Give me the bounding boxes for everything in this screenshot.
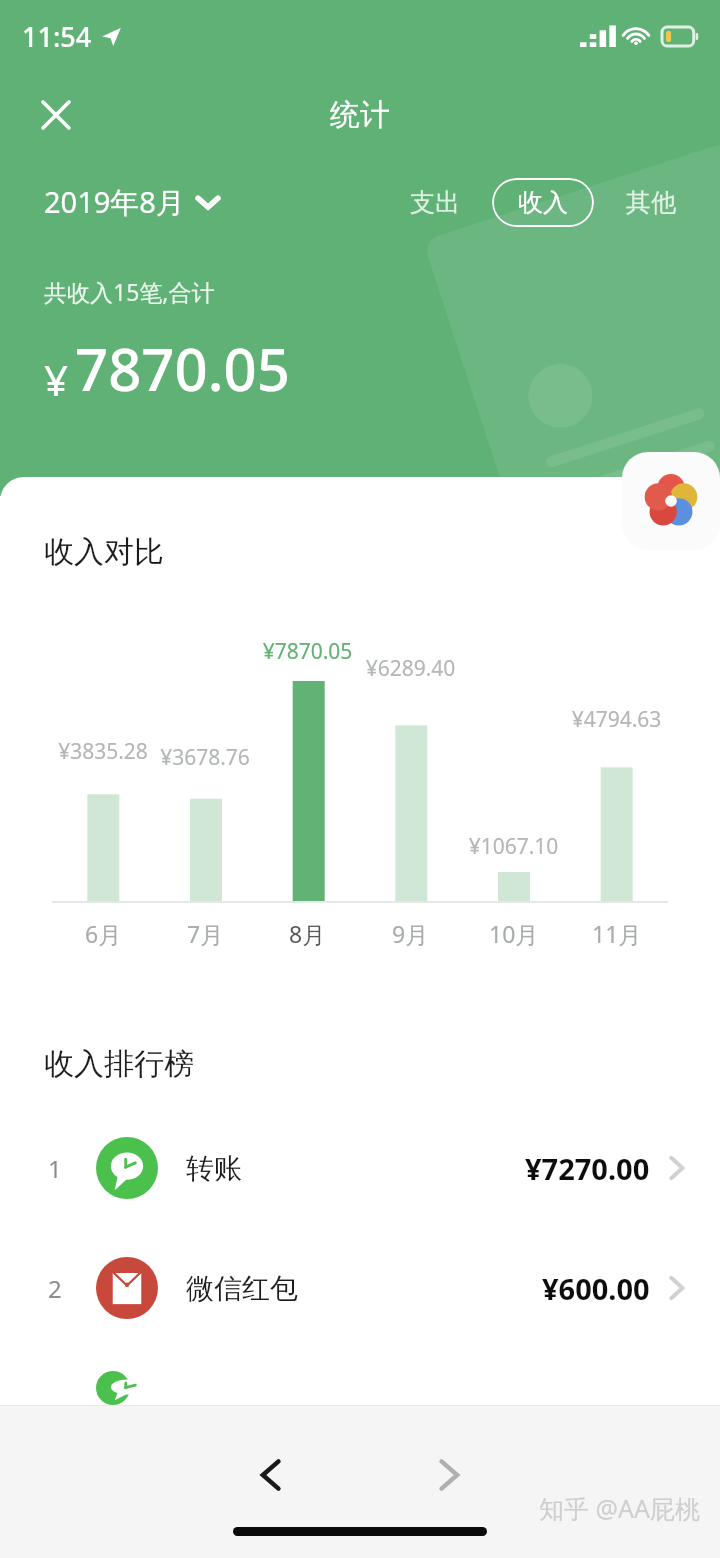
staticText: 收入排行榜 bbox=[44, 1045, 194, 1083]
staticText: ¥1067.10 bbox=[462, 832, 565, 861]
staticText: 转账 bbox=[186, 1151, 242, 1186]
staticText: 11:54 bbox=[22, 18, 92, 55]
button[interactable]: 支出 bbox=[396, 179, 474, 226]
staticText: 8月 bbox=[289, 918, 326, 949]
staticText: 7月 bbox=[187, 918, 224, 949]
staticText: 微信红包 bbox=[186, 1271, 298, 1306]
staticText: ¥3835.28 bbox=[52, 737, 154, 766]
staticText: 知乎 @AA屁桃 bbox=[539, 1491, 700, 1525]
staticText: ¥7870.05 bbox=[256, 637, 359, 666]
staticText: ¥3678.76 bbox=[154, 743, 256, 772]
staticText: ¥6289.40 bbox=[359, 654, 462, 683]
staticText: 收入 bbox=[518, 187, 568, 218]
staticText: 11月 bbox=[592, 918, 642, 949]
staticText: 7870.05 bbox=[75, 329, 290, 408]
staticText: 2019年8月 bbox=[44, 182, 185, 222]
staticText: ¥7270.00 bbox=[525, 1149, 650, 1188]
button[interactable]: 收入 bbox=[492, 178, 594, 227]
staticText: 其他 bbox=[626, 187, 676, 218]
staticText: 收入对比 bbox=[44, 533, 164, 571]
button[interactable]: Back bbox=[225, 1429, 317, 1521]
staticText: 统计 bbox=[330, 96, 390, 134]
button[interactable]: 其他 bbox=[612, 179, 690, 226]
button[interactable]: 1 bbox=[0, 1131, 720, 1205]
staticText: 6月 bbox=[85, 918, 122, 949]
staticText: 9月 bbox=[392, 918, 429, 949]
button[interactable]: Close bbox=[22, 81, 90, 149]
staticText: ¥600.00 bbox=[542, 1269, 650, 1308]
staticText: 1 bbox=[48, 1152, 62, 1185]
button[interactable]: 2019年8月 bbox=[44, 176, 219, 228]
button[interactable]: App logo bbox=[622, 452, 720, 550]
staticText: 10月 bbox=[489, 918, 539, 949]
button[interactable]: 2 bbox=[0, 1251, 720, 1325]
button[interactable]: Forward bbox=[403, 1429, 495, 1521]
staticText: 支出 bbox=[410, 187, 460, 218]
staticText: ¥ bbox=[44, 351, 69, 408]
staticText: 共收入15笔,合计 bbox=[44, 276, 215, 307]
staticText: ¥4794.63 bbox=[565, 705, 668, 734]
staticText: 2 bbox=[48, 1272, 62, 1305]
